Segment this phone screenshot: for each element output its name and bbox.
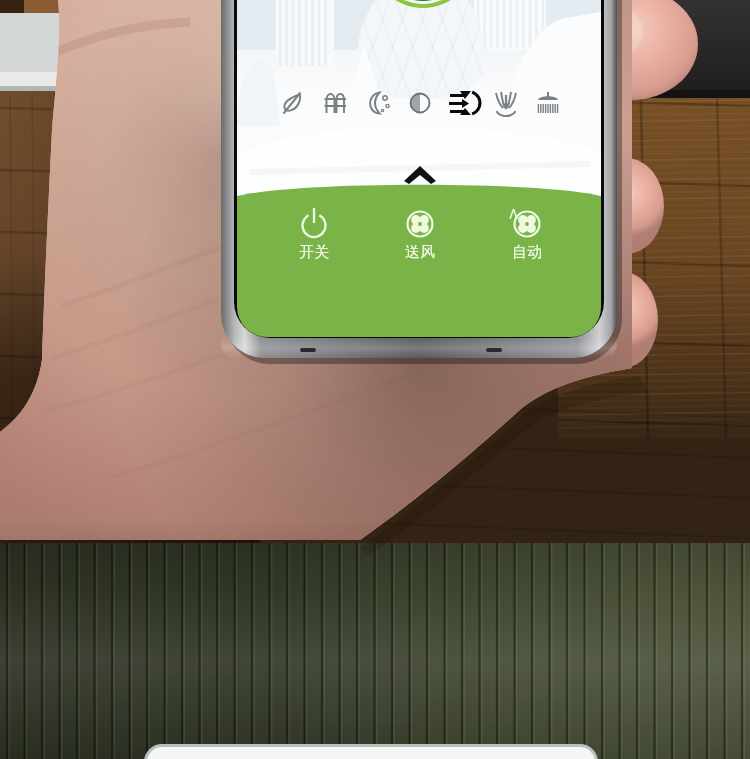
staticText: 送风 bbox=[405, 243, 435, 262]
button[interactable]: Air flow bbox=[443, 84, 483, 122]
staticText: 自动 bbox=[512, 243, 542, 262]
button[interactable]: 开关 bbox=[274, 202, 354, 266]
button[interactable]: Eco mode bbox=[272, 84, 312, 122]
button[interactable]: Expand controls bbox=[396, 160, 444, 188]
button[interactable]: 自动 bbox=[487, 202, 567, 266]
button[interactable]: Sleep mode bbox=[358, 84, 398, 122]
button[interactable]: Brightness bbox=[400, 84, 440, 122]
button[interactable]: Drying bbox=[486, 84, 526, 122]
button[interactable]: 送风 bbox=[380, 202, 460, 266]
staticText: 开关 bbox=[299, 243, 329, 262]
button[interactable]: Self clean bbox=[528, 84, 568, 122]
button[interactable]: Filter bbox=[315, 84, 355, 122]
